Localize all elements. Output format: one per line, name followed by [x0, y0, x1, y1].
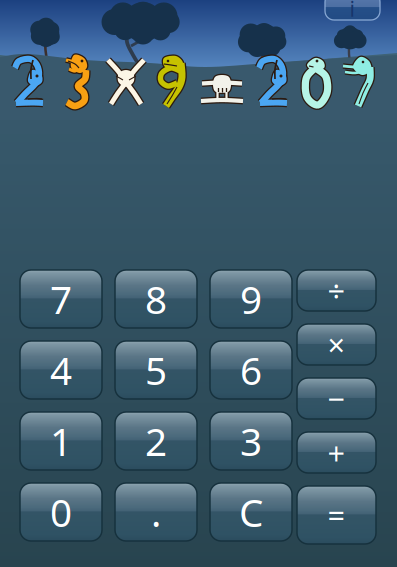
button[interactable]: ÷ — [297, 270, 376, 311]
button[interactable]: × — [297, 324, 376, 365]
staticText: − — [327, 378, 345, 419]
staticText: 5 — [145, 344, 167, 396]
staticText: 7 — [50, 273, 72, 325]
staticText: = — [327, 495, 345, 535]
button[interactable]: = — [297, 486, 376, 544]
button[interactable]: 5 — [115, 341, 197, 399]
staticText: ÷ — [327, 270, 345, 311]
button[interactable]: Info — [325, 0, 380, 20]
button[interactable]: 2 — [115, 412, 197, 470]
staticText: C — [239, 486, 263, 538]
staticText: 3 — [240, 415, 262, 467]
button[interactable]: 9 — [210, 270, 292, 328]
button[interactable]: 0 — [20, 483, 102, 541]
button[interactable]: 6 — [210, 341, 292, 399]
staticText: 6 — [240, 344, 262, 396]
button[interactable]: 7 — [20, 270, 102, 328]
staticText: 8 — [145, 273, 167, 325]
button[interactable]: . — [115, 483, 197, 541]
staticText: i — [349, 0, 355, 23]
staticText: × — [327, 324, 345, 365]
staticText: 2 — [145, 415, 167, 467]
button[interactable]: − — [297, 378, 376, 419]
staticText: 0 — [50, 486, 72, 538]
button[interactable]: + — [297, 432, 376, 473]
button[interactable]: 3 — [210, 412, 292, 470]
staticText: 1 — [50, 415, 72, 467]
staticText: 4 — [50, 344, 72, 396]
button[interactable]: C — [210, 483, 292, 541]
staticText: + — [327, 432, 345, 473]
staticText: . — [151, 486, 161, 538]
staticText: 9 — [240, 273, 262, 325]
button[interactable]: 1 — [20, 412, 102, 470]
button[interactable]: 8 — [115, 270, 197, 328]
button[interactable]: 4 — [20, 341, 102, 399]
